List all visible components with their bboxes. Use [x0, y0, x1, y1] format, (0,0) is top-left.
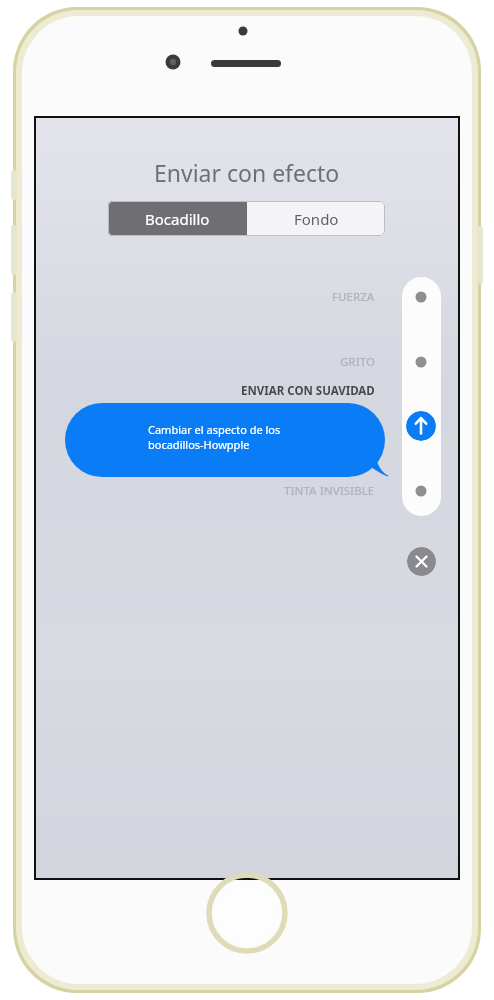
- button[interactable]: Fondo: [247, 201, 385, 236]
- button[interactable]: FUERZA: [200, 288, 375, 306]
- staticText: Bocadillo: [145, 209, 210, 229]
- staticText: bocadillos-Howpple: [148, 437, 250, 452]
- button[interactable]: Tinta invisible: [408, 478, 434, 504]
- button[interactable]: Enviar con suavidad: [406, 411, 436, 441]
- staticText: Cambiar el aspecto de los: [148, 422, 281, 437]
- button[interactable]: TINTA INVISIBLE: [200, 482, 375, 500]
- staticText: TINTA INVISIBLE: [284, 483, 375, 499]
- button[interactable]: ENVIAR CON SUAVIDAD: [195, 382, 375, 400]
- staticText: ENVIAR CON SUAVIDAD: [241, 383, 375, 399]
- staticText: FUERZA: [332, 289, 375, 305]
- button[interactable]: GRITO: [200, 353, 375, 371]
- staticText: Fondo: [294, 209, 339, 229]
- button[interactable]: Fuerza: [408, 284, 434, 310]
- button[interactable]: Cerrar: [407, 547, 436, 576]
- button[interactable]: Bocadillo: [108, 201, 247, 236]
- button[interactable]: Grito: [408, 349, 434, 375]
- staticText: GRITO: [340, 354, 375, 370]
- staticText: Enviar con efecto: [154, 157, 340, 188]
